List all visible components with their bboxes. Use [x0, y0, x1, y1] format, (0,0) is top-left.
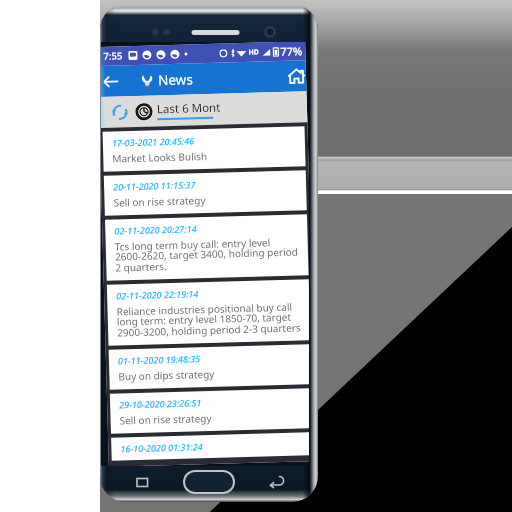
button[interactable]: Last 6 Mont: [136, 100, 221, 121]
staticText: 7:55: [103, 49, 123, 63]
button[interactable]: 02-11-2020 20:27:14: [105, 214, 309, 281]
staticText: Last 6 Mont: [157, 100, 221, 117]
staticText: 16-10-2020 01:31:24: [120, 440, 203, 454]
button[interactable]: 01-11-2020 19:48:35: [109, 344, 309, 390]
staticText: Sell on rise strategy: [119, 411, 212, 427]
staticText: Reliance industries positional buy call …: [116, 299, 308, 339]
button[interactable]: Refresh: [112, 104, 128, 121]
staticText: HD: [248, 47, 260, 58]
button[interactable]: 17-03-2021 20:45:46: [102, 126, 305, 172]
staticText: Tcs long term buy call: entry level 2600…: [115, 234, 306, 274]
staticText: 17-03-2021 20:45:46: [112, 134, 195, 149]
button[interactable]: 20-11-2020 11:15:37: [104, 170, 307, 216]
button[interactable]: 02-11-2020 22:19:14: [107, 279, 309, 346]
button[interactable]: Back: [103, 73, 119, 90]
staticText: News: [158, 70, 193, 89]
staticText: Sell on rise strategy: [113, 193, 206, 210]
staticText: 29-10-2020 23:26:51: [119, 396, 202, 410]
staticText: 77%: [280, 43, 303, 59]
staticText: Market Looks Bulish: [112, 149, 207, 166]
staticText: 01-11-2020 19:48:35: [118, 352, 201, 366]
button[interactable]: Home: [287, 66, 306, 86]
button[interactable]: Recents: [135, 474, 151, 490]
staticText: 02-11-2020 20:27:14: [114, 222, 197, 237]
staticText: Buy on dips strategy: [118, 367, 215, 383]
staticText: 20-11-2020 11:15:37: [113, 178, 196, 193]
button[interactable]: Back: [268, 472, 286, 490]
button[interactable]: 29-10-2020 23:26:51: [110, 388, 309, 434]
staticText: 02-11-2020 22:19:14: [116, 287, 199, 301]
button[interactable]: 16-10-2020 01:31:24: [111, 432, 309, 461]
button[interactable]: Home button: [185, 472, 233, 492]
